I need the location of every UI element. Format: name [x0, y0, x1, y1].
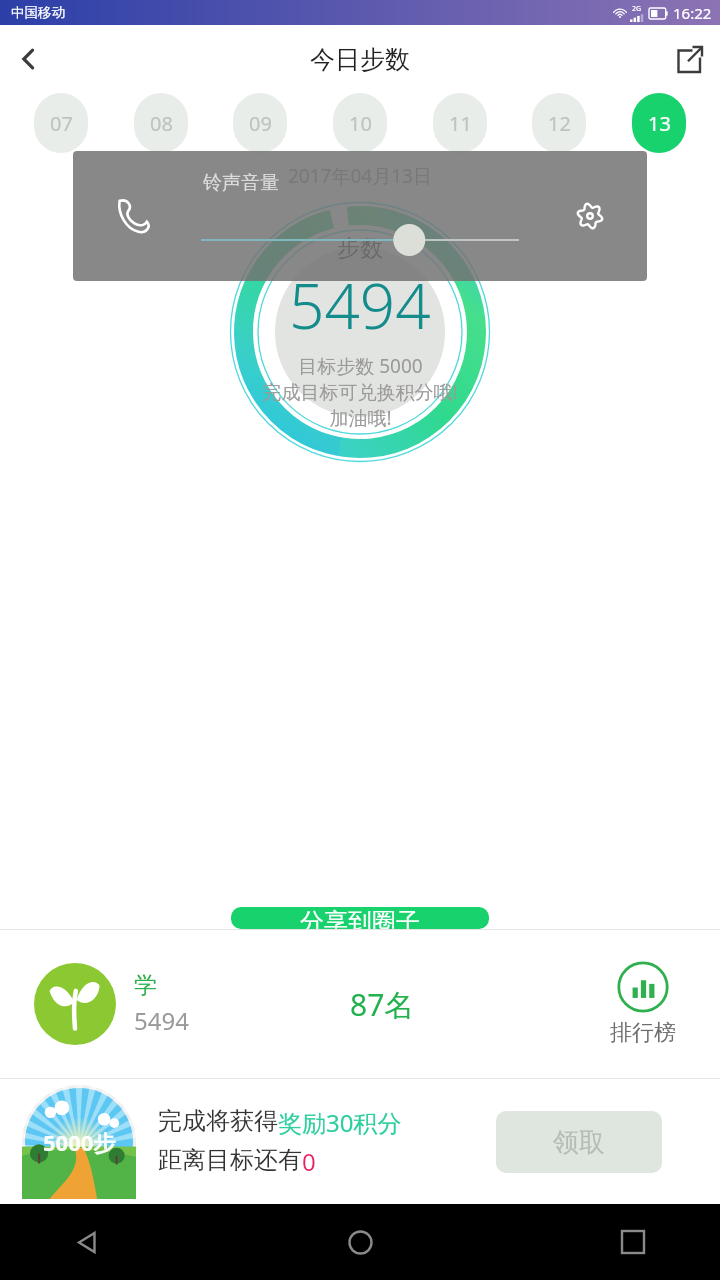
button[interactable]: 领取: [496, 1111, 662, 1173]
staticText: 今日步数: [310, 44, 410, 75]
button[interactable]: 09: [233, 93, 287, 153]
button[interactable]: Ringer: [111, 193, 157, 239]
staticText: 08: [150, 110, 173, 137]
staticText: 5494: [289, 263, 431, 347]
staticText: 09: [249, 110, 272, 137]
staticText: 分享到圈子: [300, 907, 420, 929]
staticText: 目标步数 5000: [298, 353, 423, 379]
button[interactable]: Back: [56, 1211, 118, 1273]
staticText: 完成目标可兑换积分哦!: [262, 379, 458, 405]
button[interactable]: 11: [433, 93, 487, 153]
staticText: 铃声音量: [203, 171, 279, 195]
button[interactable]: 13: [632, 93, 686, 153]
staticText: 距离目标还有: [158, 1145, 302, 1175]
button[interactable]: 12: [532, 93, 586, 153]
staticText: 13: [648, 110, 671, 137]
staticText: 10: [349, 110, 372, 137]
button[interactable]: 07: [34, 93, 88, 153]
button[interactable]: 08: [134, 93, 188, 153]
staticText: 07: [50, 110, 73, 137]
button[interactable]: 10: [333, 93, 387, 153]
button[interactable]: 分享到圈子: [231, 907, 489, 929]
button[interactable]: Back: [0, 30, 58, 88]
staticText: 12: [548, 110, 571, 137]
button[interactable]: 87名: [350, 984, 415, 1025]
button[interactable]: Home: [329, 1211, 391, 1273]
button[interactable]: 排行榜: [610, 961, 676, 1047]
button[interactable]: Share: [658, 28, 720, 90]
staticText: 排行榜: [610, 1019, 676, 1047]
staticText: 奖励30积分: [278, 1106, 402, 1139]
button[interactable]: Volume slider: [201, 223, 519, 257]
staticText: 加油哦!: [329, 405, 392, 431]
button[interactable]: Settings: [567, 193, 613, 239]
staticText: 16:22: [673, 3, 712, 23]
staticText: 2G: [632, 4, 642, 14]
staticText: 步数: [337, 234, 383, 263]
staticText: 中国移动: [11, 4, 65, 21]
staticText: 完成将获得: [158, 1106, 278, 1136]
staticText: 5494: [134, 1004, 189, 1037]
button[interactable]: Recents: [602, 1211, 664, 1273]
staticText: 5000步: [43, 1127, 116, 1157]
staticText: 领取: [553, 1126, 605, 1159]
staticText: 学: [134, 971, 157, 1000]
staticText: 0: [302, 1145, 316, 1178]
button[interactable]: 学: [34, 963, 189, 1045]
staticText: 11: [449, 110, 472, 137]
staticText: 2017年04月13日: [288, 163, 432, 189]
